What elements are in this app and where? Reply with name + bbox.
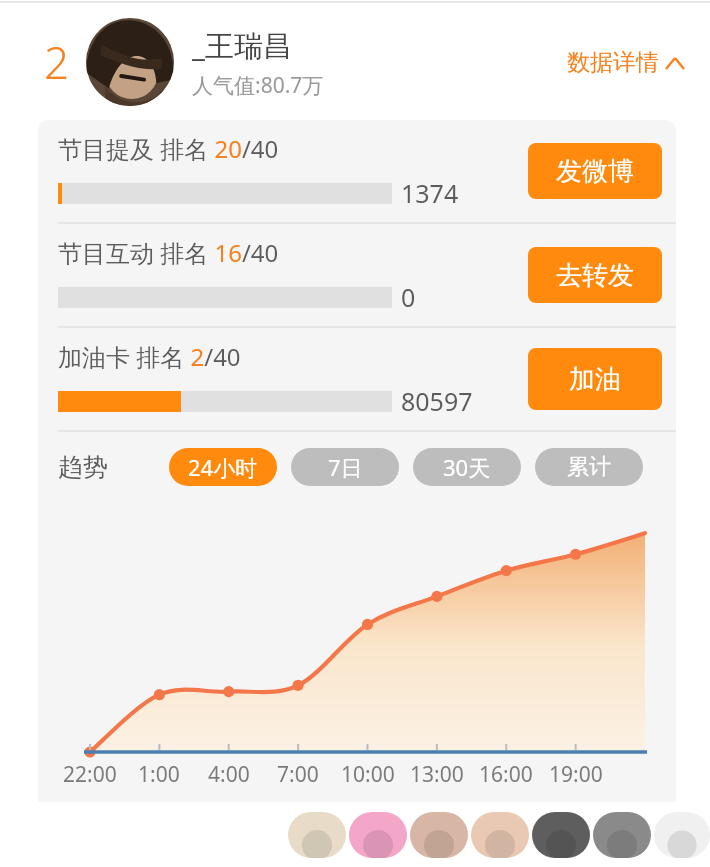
button[interactable]: 去转发 bbox=[528, 247, 662, 303]
button[interactable]: Fan avatar bbox=[471, 812, 529, 858]
staticText: 30天 bbox=[443, 452, 491, 482]
button[interactable]: Fan avatar bbox=[410, 812, 468, 858]
button[interactable]: 发微博 bbox=[528, 143, 662, 199]
staticText: 节目互动 排名 16/40 bbox=[58, 236, 279, 269]
staticText: 24小时 bbox=[188, 452, 258, 482]
staticText: 7:00 bbox=[277, 760, 319, 789]
button[interactable]: Fan avatar bbox=[288, 812, 346, 858]
button[interactable]: Fan avatar bbox=[654, 812, 710, 858]
staticText: 去转发 bbox=[556, 259, 634, 292]
staticText: 16:00 bbox=[479, 760, 533, 789]
staticText: 4:00 bbox=[208, 760, 250, 789]
staticText: 加油 bbox=[569, 363, 621, 396]
staticText: 2 bbox=[44, 32, 70, 92]
button[interactable]: Profile photo bbox=[86, 18, 174, 106]
staticText: 累计 bbox=[567, 453, 611, 481]
staticText: 趋势 bbox=[58, 452, 108, 483]
button[interactable]: Fan avatar bbox=[349, 812, 407, 858]
staticText: 人气值:80.7万 bbox=[192, 71, 324, 100]
staticText: 数据详情 bbox=[567, 48, 659, 77]
staticText: _王瑞昌 bbox=[192, 25, 292, 65]
button[interactable]: 累计 bbox=[535, 448, 643, 486]
button[interactable]: 30天 bbox=[413, 448, 521, 486]
staticText: 13:00 bbox=[410, 760, 464, 789]
staticText: 22:00 bbox=[63, 760, 117, 789]
button[interactable]: 7日 bbox=[291, 448, 399, 486]
staticText: 7日 bbox=[328, 452, 363, 482]
staticText: 加油卡 排名 2/40 bbox=[58, 340, 241, 373]
staticText: 19:00 bbox=[549, 760, 603, 789]
button[interactable]: Fan avatar bbox=[593, 812, 651, 858]
button[interactable]: 24小时 bbox=[169, 448, 277, 486]
staticText: 1:00 bbox=[138, 760, 180, 789]
button[interactable]: Fan avatar bbox=[532, 812, 590, 858]
button[interactable]: 加油 bbox=[528, 348, 662, 410]
staticText: 发微博 bbox=[556, 155, 634, 188]
staticText: 0 bbox=[401, 280, 416, 314]
staticText: 1374 bbox=[401, 176, 459, 210]
staticText: 10:00 bbox=[341, 760, 395, 789]
button[interactable]: 数据详情 bbox=[559, 40, 692, 85]
staticText: 节目提及 排名 20/40 bbox=[58, 132, 279, 165]
staticText: 80597 bbox=[401, 384, 473, 418]
